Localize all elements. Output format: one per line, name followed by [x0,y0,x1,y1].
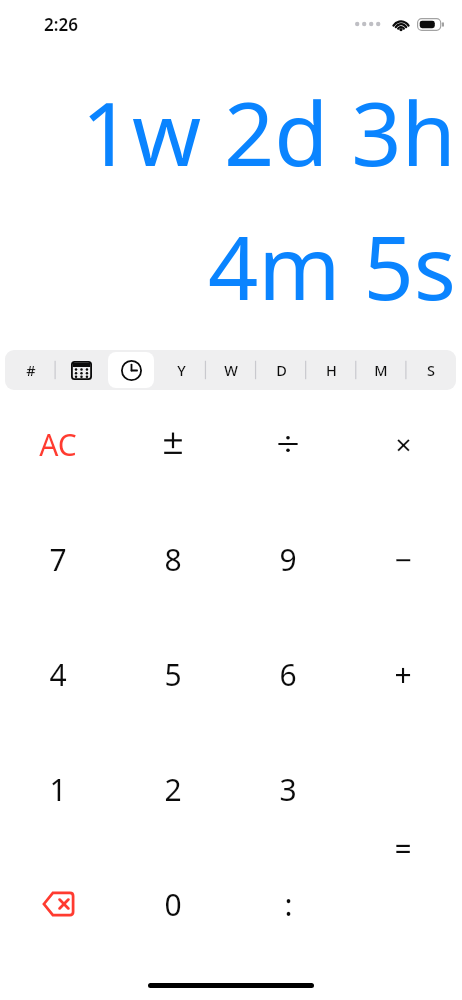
staticText: 8 [164,539,182,580]
button[interactable] [117,388,229,500]
staticText: − [394,539,412,580]
staticText: 2 [164,769,182,810]
button[interactable]: H [308,352,354,388]
staticText: 4 [49,654,67,695]
staticText: 1w 2d 3h [16,72,456,192]
button[interactable]: 6 [232,618,344,730]
button[interactable]: 9 [232,503,344,615]
button[interactable]: # [7,352,54,388]
staticText: 7 [49,539,67,580]
staticText: 6 [279,654,297,695]
button[interactable]: Calendar units [58,352,104,388]
button[interactable]: − [347,503,459,615]
button[interactable]: : [232,848,344,960]
button[interactable]: S [408,352,454,388]
button[interactable] [232,388,344,500]
staticText: = [394,828,412,869]
button[interactable]: 5 [117,618,229,730]
button[interactable]: Y [158,352,204,388]
button[interactable]: 8 [117,503,229,615]
staticText: H [326,360,337,380]
staticText: # [26,360,36,380]
button[interactable]: AC [2,388,114,500]
button[interactable]: × [347,388,459,500]
button[interactable]: W [208,352,254,388]
button[interactable]: Delete [2,848,114,960]
button[interactable]: 7 [2,503,114,615]
staticText: W [224,360,238,380]
staticText: 4m 5s [16,206,456,326]
staticText: Y [177,360,186,380]
staticText: 2:26 [44,13,78,36]
staticText: : [284,884,293,925]
staticText: + [394,654,412,695]
button[interactable]: = [347,792,459,904]
staticText: 5 [164,654,182,695]
button[interactable]: Time units [108,352,154,388]
staticText: M [374,360,388,380]
staticText: 3 [279,769,297,810]
button[interactable]: 1 [2,733,114,845]
staticText: × [395,425,412,463]
staticText: S [427,360,435,380]
staticText: D [276,360,287,380]
button[interactable]: D [258,352,304,388]
button[interactable]: 0 [117,848,229,960]
staticText: 0 [164,884,182,925]
button[interactable]: 4 [2,618,114,730]
staticText: 1 [49,769,67,810]
staticText: 9 [279,539,297,580]
button[interactable]: + [347,618,459,730]
staticText: AC [39,424,77,465]
button[interactable]: M [358,352,404,388]
button[interactable]: 2 [117,733,229,845]
button[interactable]: 3 [232,733,344,845]
